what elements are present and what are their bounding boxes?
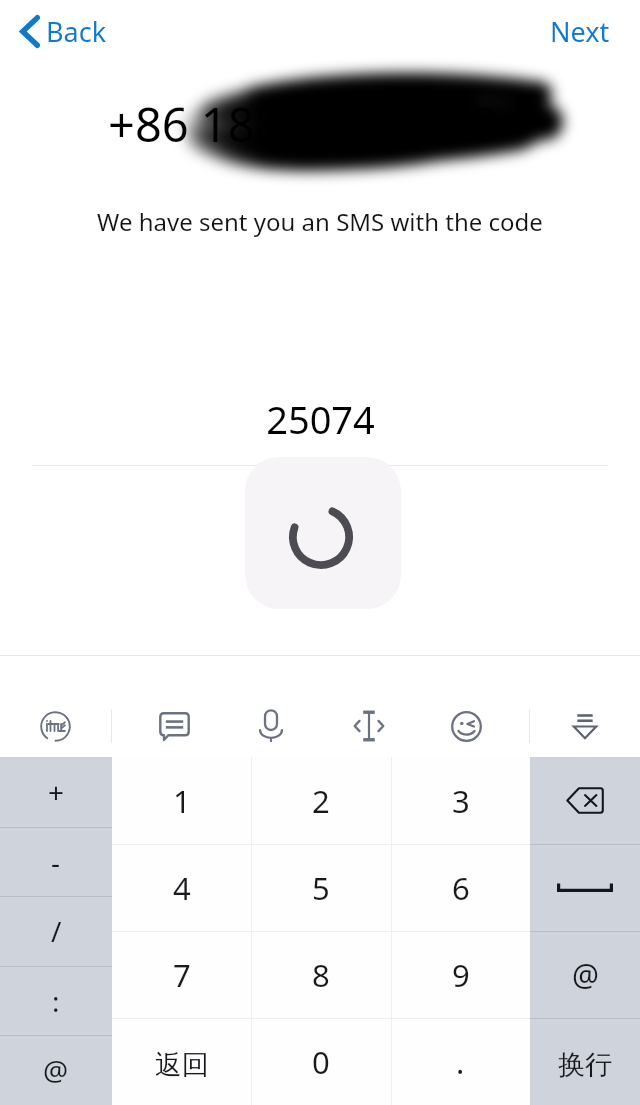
button[interactable]: Emoji <box>436 696 496 756</box>
staticText: @ <box>572 954 599 995</box>
button[interactable]: 25074 <box>32 385 608 466</box>
staticText: Back <box>46 13 107 50</box>
button[interactable]: @ <box>530 931 640 1018</box>
button[interactable]: + <box>0 757 112 827</box>
staticText: 6 <box>452 867 470 909</box>
staticText: We have sent you an SMS with the code <box>0 205 640 238</box>
staticText: - <box>51 843 61 881</box>
button[interactable]: Backspace <box>530 757 640 844</box>
button[interactable]: 0 <box>251 1018 390 1105</box>
button[interactable]: 7 <box>112 931 251 1018</box>
staticText: 9 <box>452 954 470 996</box>
button[interactable]: Voice input <box>241 696 301 756</box>
button[interactable]: / <box>0 896 112 966</box>
button[interactable]: 返回 <box>112 1018 251 1105</box>
button[interactable]: 5 <box>251 844 390 931</box>
button[interactable]: 4 <box>112 844 251 931</box>
staticText: . <box>456 1041 465 1083</box>
staticText: 换行 <box>558 1048 612 1082</box>
staticText: / <box>51 912 62 950</box>
staticText: + <box>48 773 65 811</box>
staticText: 8 <box>312 954 330 996</box>
button[interactable]: 1 <box>112 757 251 844</box>
staticText: 3 <box>452 780 470 822</box>
button[interactable]: Hide keyboard <box>555 696 615 756</box>
staticText: 4 <box>173 867 191 909</box>
button[interactable]: Next <box>542 7 618 56</box>
button[interactable]: @ <box>0 1035 112 1105</box>
staticText: 25074 <box>266 393 375 445</box>
button[interactable]: Text <box>144 696 204 756</box>
staticText: 1 <box>173 780 191 822</box>
button[interactable]: . <box>391 1018 530 1105</box>
staticText: Next <box>550 13 610 50</box>
staticText: 返回 <box>155 1048 209 1082</box>
staticText: : <box>52 982 60 1020</box>
staticText: 5 <box>312 867 330 909</box>
button[interactable]: 2 <box>251 757 390 844</box>
staticText: +86 18812345678 <box>108 92 497 156</box>
button[interactable]: 8 <box>251 931 390 1018</box>
staticText: 2 <box>312 780 330 822</box>
button[interactable]: Input method <box>25 696 85 756</box>
button[interactable]: 3 <box>391 757 530 844</box>
button[interactable]: - <box>0 827 112 897</box>
button[interactable]: Move cursor <box>339 696 399 756</box>
button[interactable]: Space <box>530 844 640 931</box>
staticText: 0 <box>312 1041 330 1083</box>
button[interactable]: 换行 <box>530 1018 640 1105</box>
button[interactable]: 9 <box>391 931 530 1018</box>
staticText: 7 <box>173 954 191 996</box>
button[interactable]: Back <box>14 7 115 56</box>
staticText: @ <box>43 1051 69 1089</box>
button[interactable]: : <box>0 966 112 1036</box>
button[interactable]: 6 <box>391 844 530 931</box>
